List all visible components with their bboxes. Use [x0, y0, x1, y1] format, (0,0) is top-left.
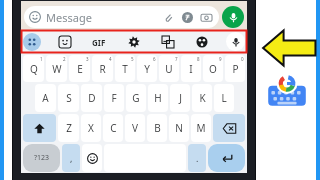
staticText: W: [52, 62, 62, 76]
staticText: 6: [153, 56, 156, 62]
button[interactable]: B: [147, 114, 167, 142]
staticText: A: [42, 91, 49, 105]
button[interactable]: E: [69, 55, 90, 82]
staticText: O: [209, 62, 217, 76]
staticText: ,: [70, 152, 73, 164]
button[interactable]: Settings: [124, 32, 144, 52]
staticText: 4: [109, 56, 112, 62]
staticText: V: [132, 121, 138, 135]
button[interactable]: X: [81, 114, 101, 142]
staticText: J: [179, 91, 182, 105]
staticText: G: [132, 91, 140, 105]
staticText: S: [66, 91, 72, 105]
button[interactable]: Stickers: [55, 32, 75, 52]
button[interactable]: L: [214, 84, 234, 112]
button[interactable]: P: [225, 55, 245, 82]
staticText: X: [88, 121, 94, 135]
button[interactable]: Period: [188, 144, 206, 172]
button[interactable]: Q: [23, 55, 44, 82]
button[interactable]: Enter: [208, 144, 245, 172]
staticText: M: [196, 121, 206, 135]
staticText: Q: [30, 62, 38, 76]
button[interactable]: U: [159, 55, 179, 82]
button[interactable]: J: [170, 84, 190, 112]
staticText: D: [88, 91, 96, 105]
staticText: E: [77, 62, 83, 76]
button[interactable]: Themes: [192, 32, 212, 52]
button[interactable]: O: [203, 55, 223, 82]
staticText: 7: [175, 56, 178, 62]
button[interactable]: G: [126, 84, 146, 112]
button[interactable]: F: [104, 84, 124, 112]
staticText: R: [99, 62, 106, 76]
staticText: I: [189, 62, 193, 76]
button[interactable]: Toolbar: [23, 33, 41, 51]
button[interactable]: Comma: [62, 144, 80, 172]
button[interactable]: T: [115, 55, 135, 82]
button[interactable]: Emoji: [82, 144, 102, 172]
button[interactable]: D: [81, 84, 102, 112]
button[interactable]: Shift: [23, 114, 56, 142]
staticText: P: [232, 62, 239, 76]
staticText: Y: [144, 62, 150, 76]
button[interactable]: Message: [24, 6, 219, 28]
staticText: .: [196, 152, 199, 164]
button[interactable]: ?123: [23, 144, 60, 172]
staticText: N: [175, 121, 183, 135]
staticText: Z: [66, 121, 72, 135]
staticText: H: [154, 91, 162, 105]
staticText: F: [111, 91, 117, 105]
staticText: 5: [131, 56, 134, 62]
button[interactable]: K: [192, 84, 212, 112]
button[interactable]: Gboard: [267, 73, 307, 113]
staticText: L: [221, 91, 227, 105]
button[interactable]: S: [58, 84, 79, 112]
staticText: 9: [219, 56, 222, 62]
staticText: Message: [46, 10, 92, 25]
staticText: T: [122, 62, 128, 76]
staticText: U: [165, 62, 173, 76]
staticText: B: [154, 121, 161, 135]
button[interactable]: V: [125, 114, 145, 142]
staticText: K: [199, 91, 206, 105]
staticText: 0: [241, 56, 244, 62]
button[interactable]: W: [46, 55, 67, 82]
button[interactable]: I: [181, 55, 201, 82]
button[interactable]: H: [148, 84, 168, 112]
button[interactable]: Z: [58, 114, 79, 142]
button[interactable]: Backspace: [213, 114, 245, 142]
staticText: C: [110, 121, 117, 135]
staticText: 2: [63, 56, 66, 62]
staticText: 3: [86, 56, 89, 62]
staticText: 1: [40, 56, 43, 62]
staticText: ?123: [34, 153, 50, 163]
button[interactable]: Voice input: [226, 32, 245, 51]
button[interactable]: N: [169, 114, 189, 142]
button[interactable]: Y: [137, 55, 157, 82]
button[interactable]: A: [35, 84, 56, 112]
button[interactable]: M: [191, 114, 211, 142]
button[interactable]: R: [92, 55, 113, 82]
button[interactable]: C: [103, 114, 123, 142]
button[interactable]: Translate: [158, 32, 178, 52]
button[interactable]: Voice message: [222, 6, 244, 28]
staticText: 8: [197, 56, 200, 62]
button[interactable]: GIF: [89, 32, 109, 52]
staticText: GIF: [92, 37, 106, 48]
